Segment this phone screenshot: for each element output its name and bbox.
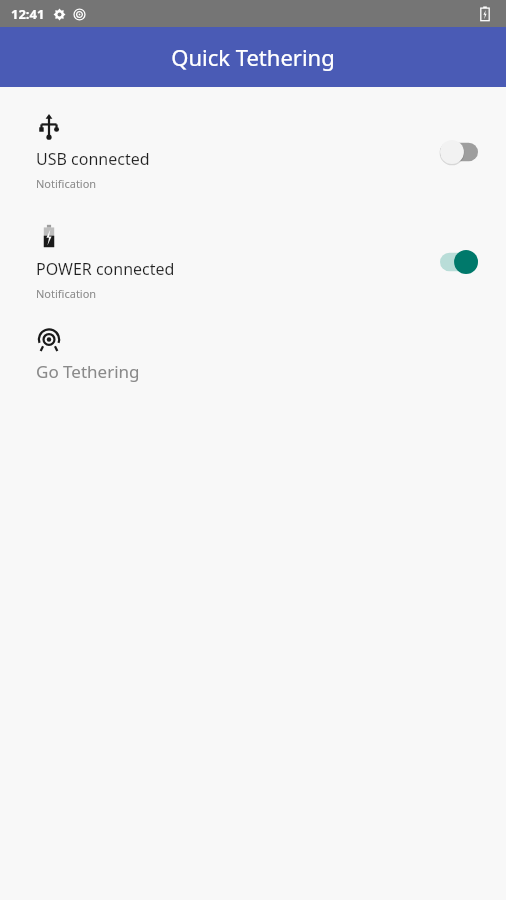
staticText: POWER connected bbox=[36, 258, 175, 280]
staticText: 12:41 bbox=[11, 5, 45, 23]
button[interactable]: USB connected toggle bbox=[422, 133, 484, 171]
button[interactable]: POWER connected bbox=[0, 223, 506, 301]
staticText: Notification bbox=[36, 176, 97, 191]
button[interactable]: Go Tethering bbox=[0, 327, 506, 383]
staticText: Notification bbox=[36, 286, 97, 301]
button[interactable]: Power connected toggle bbox=[422, 243, 484, 281]
staticText: Go Tethering bbox=[36, 360, 140, 383]
staticText: Quick Tethering bbox=[171, 42, 335, 72]
button[interactable]: USB connected bbox=[0, 113, 506, 191]
staticText: USB connected bbox=[36, 148, 150, 170]
